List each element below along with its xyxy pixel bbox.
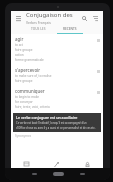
button[interactable]: Back: [23, 168, 45, 180]
button[interactable]: CONJUGAISON: [11, 160, 41, 174]
staticText: to act: [15, 43, 23, 47]
staticText: d'Office chose ou avec il y a aussi et c…: [16, 126, 96, 130]
button[interactable]: Item menu: [96, 90, 100, 94]
button[interactable]: agir: [11, 34, 103, 65]
staticText: Le verbe conjuguer est un auxiliaire: [16, 115, 78, 120]
staticText: communiquer: [15, 88, 45, 94]
button[interactable]: More options: [90, 13, 100, 23]
button[interactable]: communiquer: [11, 86, 103, 112]
button[interactable]: Item menu: [96, 38, 100, 42]
staticText: action: [15, 53, 24, 57]
staticText: Synonymes: [15, 134, 32, 138]
staticText: to begin to make: [15, 95, 39, 99]
button[interactable]: RECENTS: [57, 25, 83, 33]
staticText: for conveyor: [15, 100, 33, 104]
staticText: faire, tente, voici, criteria: [15, 105, 50, 109]
button[interactable]: Le verbe conjuguer est un auxiliaire: [13, 113, 101, 132]
button[interactable]: Item menu: [96, 69, 100, 73]
staticText: Ce verbe est basé l'indicatif, lorsqu'il…: [16, 121, 98, 125]
button[interactable]: FAVORIS: [72, 160, 103, 174]
staticText: RECENTS: [63, 27, 77, 31]
staticText: Conjugaison des Verbes: [26, 11, 79, 19]
staticText: forme grammaticale: [15, 58, 44, 62]
staticText: to make sure of, to realise: [15, 74, 52, 78]
button[interactable]: QUIZ / JEUX: [41, 160, 72, 174]
staticText: TOUS LES VERBES: [31, 27, 57, 31]
staticText: faire groupe: [15, 48, 33, 52]
button[interactable]: Search: [79, 13, 89, 23]
button[interactable]: TOUS LES VERBES: [31, 25, 57, 33]
button[interactable]: Home: [45, 168, 71, 180]
staticText: agir: [15, 36, 24, 42]
staticText: s'apercevoir: [15, 67, 41, 73]
staticText: faire groupe: [15, 79, 33, 83]
staticText: Verbes Français: [26, 20, 51, 25]
button[interactable]: Open navigation drawer: [14, 14, 23, 23]
button[interactable]: Recent apps: [71, 168, 93, 180]
button[interactable]: s'apercevoir: [11, 65, 103, 86]
